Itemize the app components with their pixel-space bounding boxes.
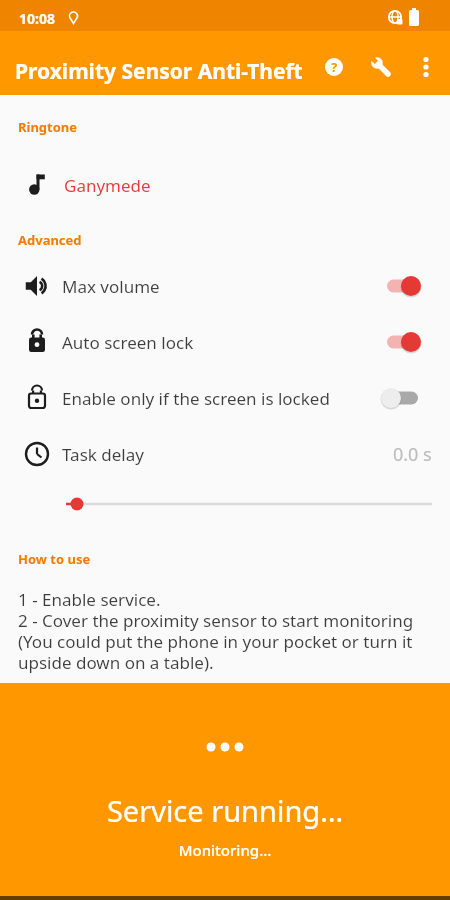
button[interactable] [369,55,393,79]
button[interactable] [414,51,438,83]
staticText: Ringtone [18,118,78,136]
staticText: ? [331,58,338,76]
staticText: How to use [18,550,91,568]
staticText: Auto screen lock [62,331,194,354]
staticText: Service running… [0,791,450,830]
staticText: 10:08 [19,9,55,28]
staticText: Ganymede [64,174,151,197]
button[interactable]: Ganymede [0,160,450,210]
staticText: Monitoring… [0,840,450,860]
staticText: Max volume [62,275,160,298]
button[interactable]: Enable only if the screen is locked [0,370,450,426]
staticText: Task delay [62,443,144,466]
button[interactable] [0,490,450,518]
button[interactable]: Max volume [0,258,450,314]
button[interactable]: ? [322,55,346,79]
button[interactable]: Task delay [0,426,450,482]
staticText: Proximity Sensor Anti-Theft [15,57,303,86]
staticText: 0.0 s [393,442,432,467]
button[interactable]: Auto screen lock [0,314,450,370]
staticText: Advanced [18,231,82,249]
button[interactable]: Service running… [0,683,450,900]
staticText: 1 - Enable service. 2 - Cover the proxim… [18,588,414,674]
staticText: Enable only if the screen is locked [62,387,330,410]
